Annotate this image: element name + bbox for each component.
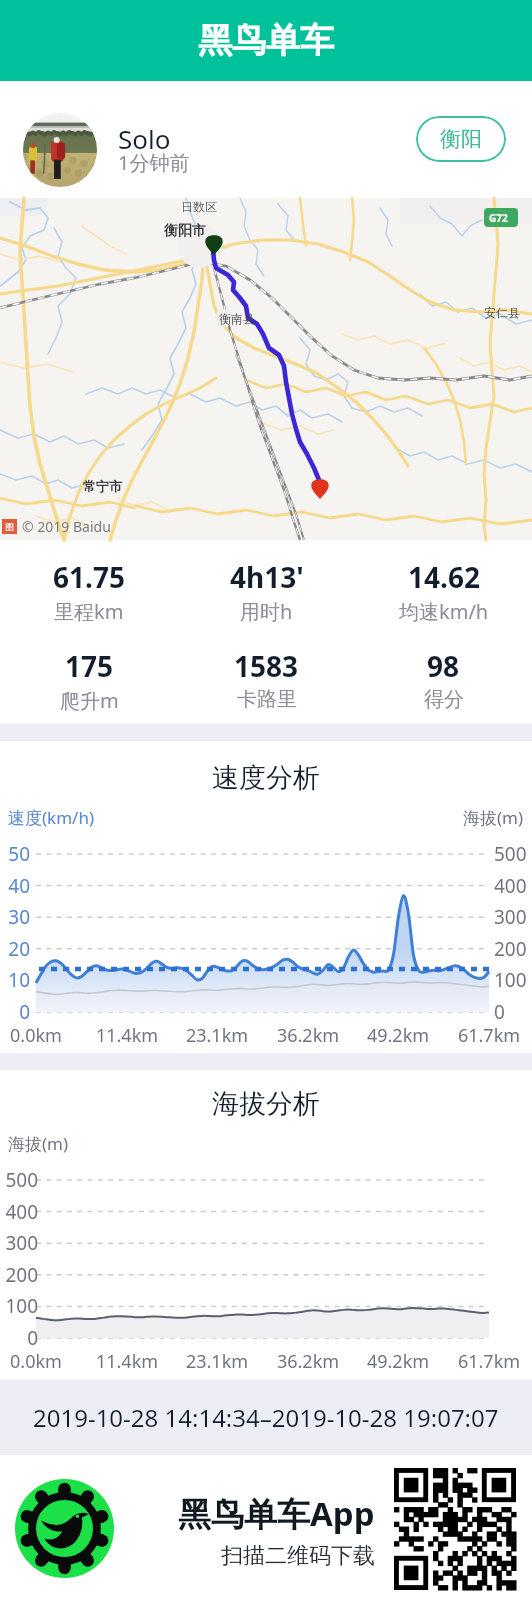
- staticText: 图: [5, 521, 14, 532]
- staticText: 400: [0, 1199, 38, 1225]
- staticText: 均速km/h: [399, 598, 489, 625]
- button[interactable]: 衡阳: [416, 116, 506, 162]
- staticText: 300: [0, 1230, 38, 1256]
- staticText: 海拔分析: [212, 1087, 320, 1121]
- staticText: 卡路里: [237, 687, 297, 712]
- staticText: 里程km: [54, 598, 124, 625]
- staticText: 海拔(m): [8, 1132, 69, 1155]
- staticText: 11.4km: [92, 1349, 162, 1374]
- staticText: 36.2km: [273, 1349, 343, 1374]
- staticText: 400: [494, 873, 532, 899]
- staticText: 用时h: [240, 598, 293, 625]
- staticText: 日数区: [181, 199, 217, 214]
- staticText: 300: [494, 904, 532, 930]
- staticText: 4h13': [230, 558, 304, 596]
- staticText: 61.75: [53, 558, 125, 596]
- button[interactable]: Route map: [0, 198, 532, 540]
- staticText: 11.4km: [92, 1023, 162, 1048]
- staticText: G72: [489, 211, 508, 225]
- button[interactable]: 98: [355, 647, 532, 712]
- button[interactable]: Solo: [0, 81, 532, 198]
- button[interactable]: 1583: [178, 647, 355, 712]
- staticText: 安仁县: [484, 305, 520, 320]
- staticText: 衡阳: [440, 126, 482, 152]
- staticText: 黑鸟单车: [198, 19, 334, 62]
- staticText: 黑鸟单车App: [178, 1491, 375, 1536]
- staticText: 20: [0, 936, 30, 962]
- staticText: 61.7km: [454, 1023, 524, 1048]
- staticText: 23.1km: [182, 1349, 252, 1374]
- staticText: 500: [0, 1167, 38, 1193]
- button[interactable]: 14.62: [355, 558, 532, 625]
- button[interactable]: 175: [0, 647, 178, 714]
- staticText: 175: [65, 647, 114, 685]
- staticText: 500: [494, 841, 532, 867]
- staticText: 得分: [424, 687, 464, 712]
- staticText: 1分钟前: [118, 149, 190, 176]
- staticText: 200: [0, 1262, 38, 1288]
- staticText: 0: [0, 1325, 38, 1351]
- staticText: © 2019 Baidu: [22, 517, 111, 536]
- staticText: 速度(km/h): [8, 806, 95, 829]
- staticText: 50: [0, 841, 30, 867]
- button[interactable]: 黑鸟单车 logo: [15, 1479, 114, 1578]
- staticText: 2019-10-28 14:14:34–2019-10-28 19:07:07: [33, 1401, 499, 1434]
- staticText: 0.0km: [1, 1349, 71, 1374]
- staticText: 0.0km: [1, 1023, 71, 1048]
- button[interactable]: 61.75: [0, 558, 178, 625]
- staticText: 49.2km: [363, 1349, 433, 1374]
- other: QR code: [394, 1468, 516, 1590]
- staticText: 23.1km: [182, 1023, 252, 1048]
- staticText: 200: [494, 936, 532, 962]
- staticText: Solo: [118, 121, 171, 156]
- staticText: 49.2km: [363, 1023, 433, 1048]
- staticText: 100: [494, 967, 532, 993]
- staticText: 衡南县: [219, 311, 255, 326]
- staticText: 61.7km: [454, 1349, 524, 1374]
- staticText: 14.62: [408, 558, 480, 596]
- button[interactable]: 4h13': [178, 558, 355, 625]
- staticText: 30: [0, 904, 30, 930]
- staticText: 36.2km: [273, 1023, 343, 1048]
- staticText: 常宁市: [83, 478, 122, 494]
- staticText: 100: [0, 1293, 38, 1319]
- staticText: 爬升m: [60, 687, 119, 714]
- staticText: 1583: [234, 647, 299, 685]
- staticText: 0: [0, 999, 30, 1025]
- staticText: 40: [0, 873, 30, 899]
- staticText: 扫描二维码下载: [221, 1542, 375, 1570]
- staticText: 速度分析: [212, 761, 320, 795]
- staticText: 衡阳市: [164, 222, 206, 240]
- staticText: 海拔(m): [463, 806, 524, 829]
- staticText: 0: [494, 999, 532, 1025]
- staticText: 98: [427, 647, 460, 685]
- staticText: 10: [0, 967, 30, 993]
